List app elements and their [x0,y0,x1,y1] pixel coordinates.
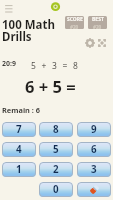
staticText: Drills [2,29,32,45]
staticText: 0 [53,183,59,196]
staticText: 2 [53,163,59,176]
staticText: 4 [16,143,22,156]
staticText: 5 [53,143,59,156]
staticText: 9 [91,123,97,136]
staticText: 20:9 [2,59,16,69]
button[interactable]: Delete [77,182,111,197]
button[interactable]: 2 [39,162,73,177]
staticText: Remain : 6 [2,105,41,115]
staticText: SCORE [67,16,83,23]
button[interactable]: Fullscreen [97,38,107,48]
button[interactable]: 3 [77,162,111,177]
staticText: 7 [16,123,22,136]
button[interactable]: SCORE [65,16,84,29]
staticText: 6 + 5 = [25,75,76,97]
button[interactable]: 6 [77,142,111,157]
button[interactable]: 5 [39,142,73,157]
button[interactable]: Settings [85,38,95,48]
staticText: 8 [53,123,59,136]
button[interactable]: BEST [88,16,107,29]
button[interactable]: 9 [77,122,111,137]
staticText: 6 [91,143,97,156]
staticText: #20 [93,24,102,29]
button[interactable]: 8 [39,122,73,137]
staticText: 3 [91,163,97,176]
staticText: 100 Math [2,17,55,33]
button[interactable]: Menu [2,2,14,14]
staticText: 5 + 3 = 8 [31,60,80,72]
button[interactable]: 7 [2,122,36,137]
button[interactable]: 1 [2,162,36,177]
button[interactable]: 0 [39,182,73,197]
staticText: #20 [70,24,79,29]
button[interactable]: 4 [2,142,36,157]
staticText: BEST [92,16,104,23]
staticText: 1 [16,163,22,176]
